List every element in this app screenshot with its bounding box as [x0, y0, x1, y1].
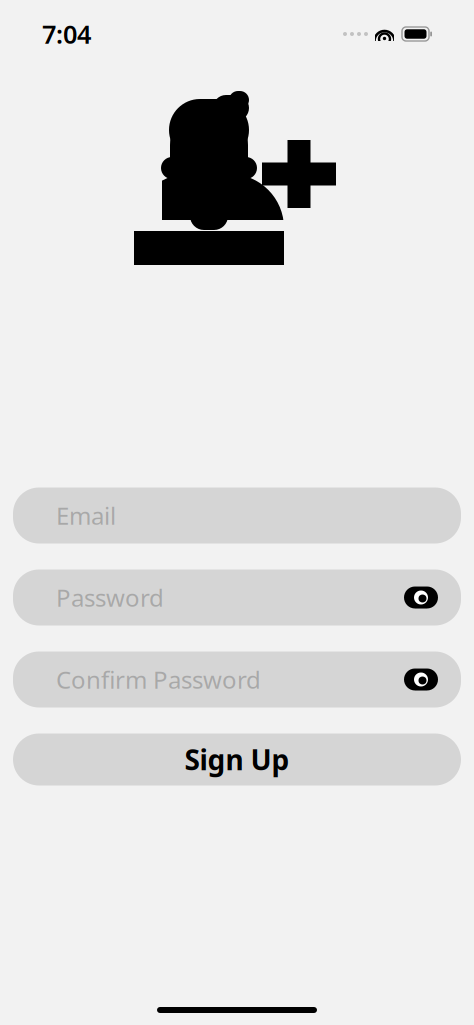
staticText: 7:04: [42, 17, 91, 51]
staticText: Password: [56, 582, 164, 613]
button[interactable]: Password: [13, 569, 461, 625]
staticText: Sign Up: [184, 741, 289, 778]
staticText: Email: [56, 500, 116, 531]
button[interactable]: Confirm Password: [13, 651, 461, 707]
button[interactable]: Sign Up: [13, 733, 461, 785]
staticText: Confirm Password: [56, 664, 261, 695]
button[interactable]: Email: [13, 487, 461, 543]
